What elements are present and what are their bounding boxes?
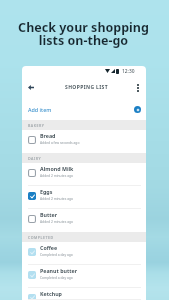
staticText: Butter xyxy=(40,211,58,218)
staticText: COMPLETED xyxy=(28,235,54,240)
staticText: Eggs xyxy=(40,188,53,195)
staticText: Added 2 minutes ago xyxy=(40,219,74,223)
staticText: Peanut butter xyxy=(40,267,78,274)
staticText: Added a few seconds ago xyxy=(40,140,80,144)
staticText: Bread xyxy=(40,132,56,139)
staticText: Added 2 minutes ago xyxy=(40,196,74,200)
button[interactable]: More options xyxy=(132,82,143,93)
staticText: Coffee xyxy=(40,244,58,251)
button[interactable]: Peanut butter xyxy=(22,265,146,288)
staticText: Add item xyxy=(28,106,52,113)
staticText: SHOPPING LIST xyxy=(65,84,108,91)
staticText: Completed a day ago xyxy=(40,298,73,300)
staticText: DAIRY xyxy=(28,156,42,161)
staticText: Completed a day ago xyxy=(40,252,73,256)
staticText: Added 2 minutes ago xyxy=(40,173,74,177)
staticText: 12:30 xyxy=(122,68,135,75)
staticText: Check your shopping lists on-the-go xyxy=(0,19,168,48)
button[interactable]: Butter xyxy=(22,209,146,232)
button[interactable]: Bread xyxy=(22,130,146,153)
staticText: Almond Milk xyxy=(40,165,74,172)
button[interactable]: Coffee xyxy=(22,242,146,265)
staticText: Completed a day ago xyxy=(40,275,73,279)
button[interactable]: Almond Milk xyxy=(22,163,146,186)
staticText: BAKERY xyxy=(28,123,45,128)
button[interactable]: Add item xyxy=(28,99,141,120)
staticText: Ketchup xyxy=(40,290,62,297)
button[interactable]: Eggs xyxy=(22,186,146,209)
button[interactable]: Ketchup xyxy=(22,288,146,300)
button[interactable]: Back xyxy=(25,82,36,93)
